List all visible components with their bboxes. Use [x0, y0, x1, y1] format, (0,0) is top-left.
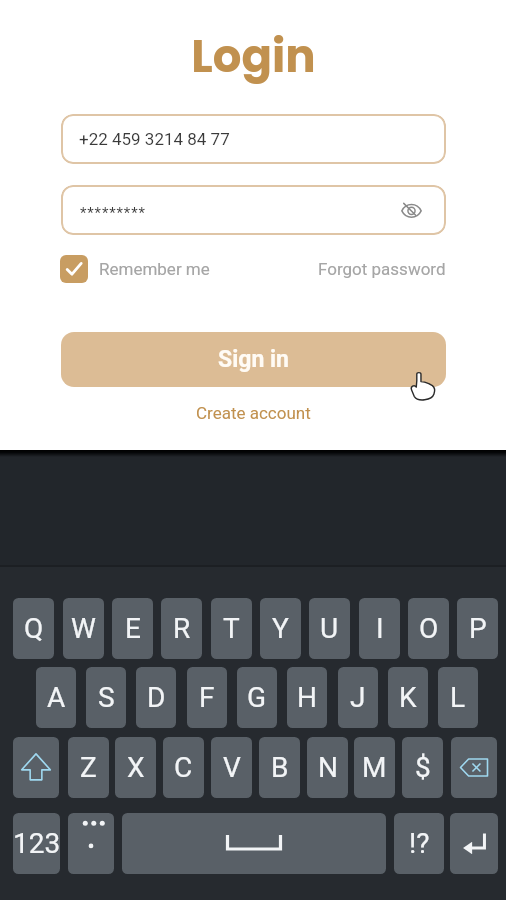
button[interactable]: R — [161, 598, 202, 659]
button[interactable]: J — [338, 667, 378, 728]
staticText: H — [297, 681, 317, 714]
staticText: ********* — [80, 204, 146, 222]
button[interactable]: Emoji — [68, 813, 114, 874]
staticText: Z — [80, 751, 97, 784]
button[interactable]: !? — [394, 813, 444, 874]
staticText: S — [98, 681, 115, 714]
button[interactable]: Remember me — [60, 254, 210, 284]
button[interactable]: D — [136, 667, 176, 728]
staticText: C — [174, 751, 193, 784]
staticText: +22 459 3214 84 77 — [79, 129, 230, 149]
staticText: !? — [409, 827, 430, 860]
button[interactable]: Show password — [396, 195, 426, 225]
button[interactable]: P — [457, 598, 498, 659]
staticText: L — [450, 681, 466, 714]
staticText: G — [247, 681, 267, 714]
staticText: Forgot password — [318, 259, 446, 279]
button[interactable]: ********* — [61, 185, 446, 235]
button[interactable]: C — [163, 737, 204, 798]
button[interactable]: G — [237, 667, 277, 728]
button[interactable]: Forgot password — [318, 259, 446, 279]
button[interactable]: Y — [260, 598, 301, 659]
button[interactable]: T — [211, 598, 252, 659]
button[interactable]: M — [354, 737, 395, 798]
button[interactable]: K — [388, 667, 428, 728]
staticText: F — [199, 681, 215, 714]
staticText: E — [125, 612, 141, 645]
staticText: O — [419, 612, 439, 645]
staticText: U — [320, 612, 339, 645]
button[interactable]: V — [211, 737, 252, 798]
button[interactable]: I — [359, 598, 400, 659]
staticText: V — [223, 751, 241, 784]
button[interactable]: A — [36, 667, 76, 728]
button[interactable]: W — [63, 598, 104, 659]
button[interactable]: Enter — [450, 813, 498, 874]
staticText: R — [173, 612, 191, 645]
staticText: 123 — [13, 827, 60, 860]
button[interactable]: L — [438, 667, 478, 728]
staticText: B — [271, 751, 289, 784]
staticText: M — [362, 751, 387, 784]
button[interactable]: S — [86, 667, 126, 728]
staticText: I — [376, 612, 384, 645]
staticText: Y — [272, 612, 289, 645]
button[interactable]: Q — [13, 598, 54, 659]
staticText: P — [469, 612, 487, 645]
button[interactable]: H — [287, 667, 327, 728]
staticText: W — [71, 612, 96, 645]
button[interactable]: B — [259, 737, 300, 798]
staticText: X — [127, 751, 145, 784]
button[interactable]: Shift — [13, 737, 59, 798]
staticText: Create account — [196, 403, 311, 423]
staticText: $ — [415, 751, 431, 784]
staticText: J — [350, 681, 366, 714]
button[interactable]: Sign in — [61, 332, 446, 387]
staticText: Login — [191, 25, 316, 88]
button[interactable]: X — [115, 737, 156, 798]
button[interactable]: Backspace — [451, 737, 497, 798]
staticText: A — [47, 681, 66, 714]
staticText: T — [223, 612, 240, 645]
staticText: K — [399, 681, 417, 714]
button[interactable]: Z — [68, 737, 109, 798]
button[interactable]: E — [112, 598, 153, 659]
staticText: Remember me — [99, 259, 210, 279]
button[interactable]: +22 459 3214 84 77 — [61, 114, 446, 164]
button[interactable]: $ — [402, 737, 443, 798]
button[interactable]: F — [187, 667, 227, 728]
button[interactable]: O — [408, 598, 449, 659]
button[interactable]: N — [307, 737, 348, 798]
staticText: Q — [24, 612, 44, 645]
button[interactable]: 123 — [13, 813, 60, 874]
button[interactable]: U — [309, 598, 350, 659]
staticText: Sign in — [218, 346, 289, 373]
button[interactable]: Create account — [196, 403, 311, 423]
button[interactable]: Space — [122, 813, 386, 874]
staticText: N — [318, 751, 338, 784]
staticText: D — [147, 681, 166, 714]
